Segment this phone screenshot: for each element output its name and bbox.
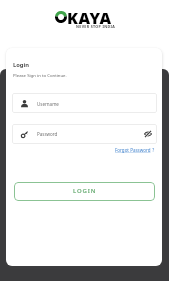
button[interactable]: Username [12,93,157,113]
staticText: Please Sign in to Continue. [13,72,67,78]
staticText: Username [37,101,59,107]
button[interactable]: Show password [141,127,155,141]
button[interactable]: Password [12,124,157,144]
staticText: Forgot Password [115,147,151,153]
staticText: LOGIN [73,187,97,195]
staticText: ? [151,147,155,153]
button[interactable]: LOGIN [14,182,155,201]
staticText: KAYA [67,7,112,29]
staticText: Login [13,61,30,69]
staticText: Password [37,131,58,137]
button[interactable]: Forgot Password [113,145,157,155]
staticText: NEVER STOP INDIA [76,24,115,29]
